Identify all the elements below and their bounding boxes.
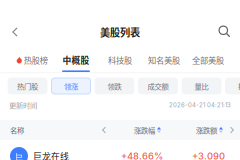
button[interactable]: 下一页 [227,120,237,140]
staticText: 热股榜 [24,54,48,66]
staticText: 换手 [238,81,240,91]
staticText: 知名美股 [148,54,180,66]
staticText: 更新时间 [9,100,37,110]
button[interactable]: 知名美股 [142,54,186,72]
button[interactable]: 热门股 [8,78,47,94]
button[interactable]: 中概股 [54,54,98,72]
staticText: 领跌 [107,81,121,91]
staticText: 中概股 [62,54,89,66]
button[interactable]: 全部美股 [186,54,230,72]
button[interactable]: 巨 [0,143,240,160]
button[interactable]: 上一页 [99,120,109,140]
staticText: 热门股 [17,81,38,91]
staticText: 名称 [10,125,24,135]
button[interactable]: 热股榜 [10,54,54,72]
button[interactable]: 返回 [4,21,26,43]
button[interactable]: 搜索 [214,21,236,43]
staticText: 2026-04-21 04:21:13 [169,101,231,109]
staticText: 科技股 [108,54,132,66]
staticText: 巨龙在线 [33,150,69,160]
staticText: 巨 [14,150,23,160]
staticText: 量比 [194,81,208,91]
button[interactable]: 换手 [225,78,240,94]
staticText: 全部美股 [192,54,224,66]
button[interactable]: 领涨 [51,78,90,94]
staticText: 成交额 [147,81,168,91]
staticText: 领涨 [64,81,78,91]
button[interactable]: 科技股 [98,54,142,72]
button[interactable]: 量比 [182,78,221,94]
staticText: 涨跌幅 [134,125,155,135]
staticText: +3.090 [192,150,225,160]
staticText: 美股列表 [100,25,140,39]
button[interactable]: 成交额 [138,78,177,94]
staticText: 涨跌额 [196,125,217,135]
button[interactable]: 涨跌幅 [134,120,161,140]
button[interactable]: 涨跌额 [196,120,223,140]
staticText: +48.66% [121,150,163,160]
button[interactable]: 领跌 [95,78,134,94]
